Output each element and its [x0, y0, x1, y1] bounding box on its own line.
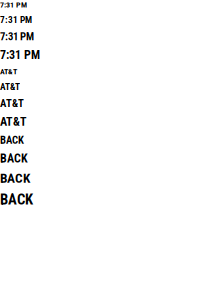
- staticText: AT&T: [0, 81, 20, 92]
- staticText: BACK: [0, 191, 33, 208]
- staticText: AT&T: [0, 97, 24, 110]
- staticText: BACK: [0, 134, 24, 146]
- staticText: AT&T: [0, 115, 27, 129]
- staticText: 7:31 PM: [0, 0, 27, 9]
- staticText: 7:31 PM: [0, 48, 40, 62]
- staticText: 7:31 PM: [0, 30, 34, 43]
- staticText: BACK: [0, 151, 28, 165]
- staticText: 7:31 PM: [0, 14, 32, 25]
- staticText: AT&T: [0, 67, 17, 76]
- staticText: BACK: [0, 170, 30, 186]
